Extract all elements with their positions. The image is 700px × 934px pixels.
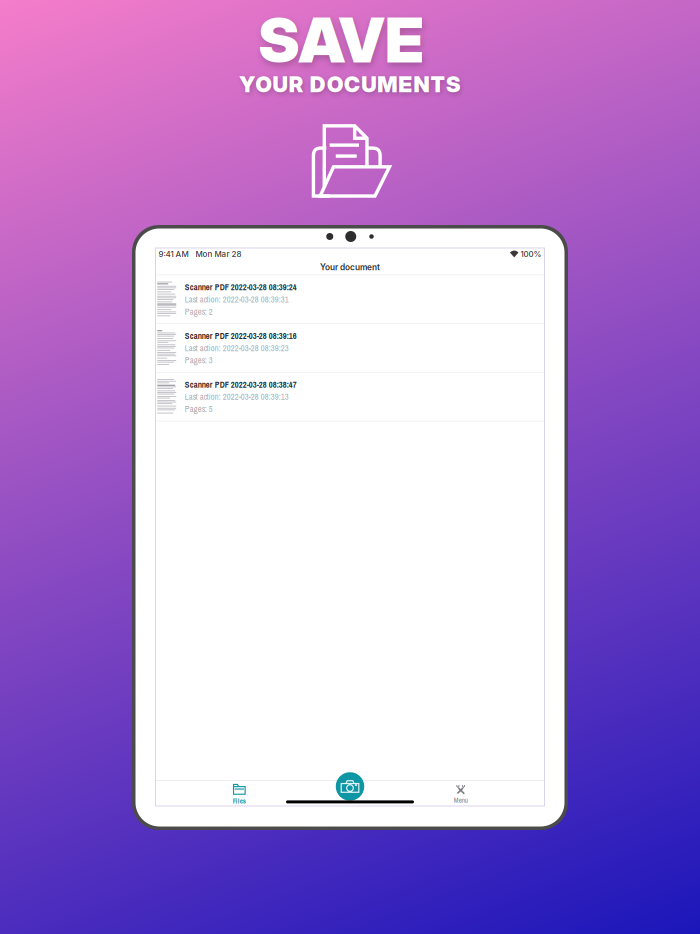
staticText: Scanner PDF 2022-03-28 08:38:47 xyxy=(185,379,297,390)
button[interactable]: Scan document xyxy=(295,784,405,805)
button[interactable]: Scanner PDF 2022-03-28 08:39:24 xyxy=(155,275,544,323)
staticText: Menu xyxy=(454,795,468,805)
button[interactable]: Menu xyxy=(405,784,516,805)
staticText: Scanner PDF 2022-03-28 08:39:24 xyxy=(185,281,297,293)
staticText: Scanner PDF 2022-03-28 08:39:16 xyxy=(185,330,297,342)
staticText: Last action: 2022-03-28 08:39:23 xyxy=(185,342,289,354)
button[interactable]: Scan xyxy=(336,772,364,801)
staticText: Mon Mar 28 xyxy=(195,249,241,259)
staticText: 9:41 AM xyxy=(158,249,188,259)
staticText: Files xyxy=(233,796,246,806)
button[interactable]: Scanner PDF 2022-03-28 08:38:47 xyxy=(155,373,544,421)
button[interactable]: Files xyxy=(184,784,295,805)
staticText: SAVE xyxy=(258,3,424,77)
staticText: Your document xyxy=(320,262,380,272)
staticText: Pages: 3 xyxy=(185,354,213,366)
staticText: Pages: 2 xyxy=(185,306,213,317)
staticText: Last action: 2022-03-28 08:39:13 xyxy=(185,391,289,402)
staticText: Last action: 2022-03-28 08:39:31 xyxy=(185,294,289,305)
staticText: YOUR DOCUMENTS xyxy=(239,71,461,97)
staticText: 100% xyxy=(520,249,541,259)
button[interactable]: Scanner PDF 2022-03-28 08:39:16 xyxy=(155,324,544,372)
staticText: Pages: 5 xyxy=(185,403,213,415)
